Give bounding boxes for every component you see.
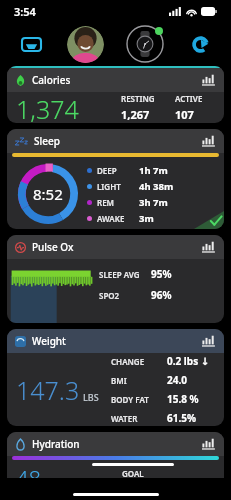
button[interactable]: Profile <box>67 26 104 63</box>
button[interactable]: Hydration <box>7 432 224 456</box>
staticText: AWAKE <box>97 213 139 224</box>
staticText: 95% <box>151 267 172 281</box>
button[interactable]: Weight chart <box>202 335 216 347</box>
staticText: CHANGE <box>111 356 167 367</box>
button[interactable]: Inbox <box>16 29 46 59</box>
staticText: 107 <box>175 107 194 122</box>
button[interactable]: Calories chart <box>202 74 216 86</box>
staticText: 96% <box>151 288 172 302</box>
staticText: BMI <box>111 375 167 386</box>
staticText: RESTING <box>121 93 155 104</box>
button[interactable]: Watch <box>126 25 164 63</box>
staticText: 1,267 <box>121 107 150 122</box>
staticText: SPO2 <box>99 290 151 301</box>
button[interactable]: Sleep chart <box>202 135 216 147</box>
staticText: Calories <box>32 73 71 87</box>
staticText: 15.8 % <box>167 392 199 406</box>
button[interactable]: Pulse Ox <box>7 235 224 323</box>
staticText: 147.3 <box>16 373 80 407</box>
staticText: LIGHT <box>97 181 139 192</box>
button[interactable]: Pulse Ox chart <box>202 241 216 253</box>
staticText: 24.0 <box>167 373 187 387</box>
staticText: BODY FAT <box>111 394 167 405</box>
staticText: 0.2 lbs ↓ <box>167 354 210 368</box>
button[interactable]: Pulse Ox <box>7 235 224 259</box>
staticText: ACTIVE <box>175 93 203 104</box>
button[interactable]: Hydration chart <box>202 438 216 450</box>
staticText: 1,374 <box>16 92 79 123</box>
button[interactable]: Hydration <box>7 432 224 478</box>
staticText: 8:52 <box>33 184 63 204</box>
staticText: 4h 38m <box>139 180 174 193</box>
button[interactable]: Calories <box>7 68 224 92</box>
staticText: DEEP <box>97 165 139 176</box>
button[interactable]: Sleep <box>7 129 224 153</box>
staticText: 48 <box>16 463 42 478</box>
staticText: 3h 7m <box>139 196 168 209</box>
staticText: WATER <box>111 413 167 424</box>
staticText: LBS <box>83 391 99 403</box>
button[interactable]: Calories <box>7 66 224 123</box>
staticText: Weight <box>32 334 66 348</box>
staticText: Pulse Ox <box>32 240 74 254</box>
button[interactable]: Sync <box>185 29 215 59</box>
staticText: 61.5% <box>167 411 196 425</box>
staticText: REM <box>97 197 139 208</box>
button[interactable]: Sleep <box>7 129 224 229</box>
button[interactable]: Weight <box>7 329 224 353</box>
button[interactable]: Weight <box>7 329 224 426</box>
staticText: Sleep <box>34 134 60 148</box>
staticText: 1h 7m <box>139 164 168 177</box>
staticText: GOAL <box>122 468 144 478</box>
staticText: Hydration <box>32 437 80 451</box>
staticText: 3m <box>139 212 154 225</box>
staticText: SLEEP AVG <box>99 269 151 280</box>
staticText: 3:54 <box>14 4 36 19</box>
